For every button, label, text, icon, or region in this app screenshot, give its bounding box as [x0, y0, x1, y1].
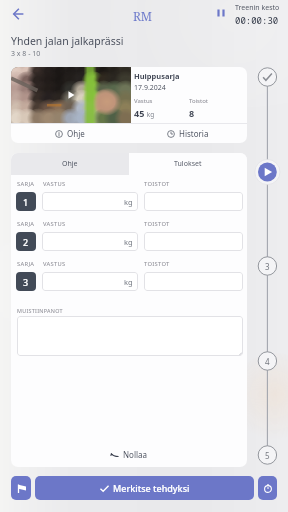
- button[interactable]: Rest timer: [258, 476, 277, 500]
- staticText: VASTUS: [43, 220, 144, 228]
- button[interactable]: Tulokset: [129, 153, 247, 175]
- button[interactable]: 5: [258, 446, 277, 465]
- staticText: Historia: [179, 128, 209, 139]
- staticText: Merkitse tehdyksi: [113, 482, 190, 494]
- button[interactable]: [17, 316, 243, 356]
- staticText: RM: [133, 8, 153, 24]
- staticText: Toistot: [189, 97, 208, 105]
- staticText: 2: [23, 236, 29, 248]
- staticText: kg: [145, 110, 155, 119]
- staticText: Ohje: [62, 159, 78, 169]
- staticText: 5: [265, 450, 270, 461]
- staticText: kg: [124, 197, 133, 207]
- staticText: SARJA: [17, 220, 43, 228]
- staticText: 3 x 8 - 10: [11, 49, 41, 59]
- staticText: Tulokset: [174, 159, 202, 169]
- staticText: 1: [23, 196, 29, 208]
- button[interactable]: kg: [42, 232, 138, 251]
- staticText: TOISTOT: [144, 260, 170, 268]
- button[interactable]: 4: [258, 352, 277, 371]
- staticText: TOISTOT: [144, 180, 170, 188]
- button[interactable]: Merkitse tehdyksi: [35, 476, 254, 500]
- staticText: Treenin kesto: [235, 3, 280, 13]
- button[interactable]: [144, 272, 243, 291]
- button[interactable]: Ohje: [11, 153, 129, 175]
- button[interactable]: Nollaa: [11, 443, 247, 465]
- button[interactable]: Historia: [129, 124, 247, 143]
- button[interactable]: 3: [258, 257, 277, 276]
- button[interactable]: kg: [42, 272, 138, 291]
- staticText: Yhden jalan jalkaprässi: [11, 34, 124, 48]
- staticText: 4: [265, 356, 270, 367]
- staticText: 8: [189, 107, 195, 119]
- staticText: TOISTOT: [144, 220, 170, 228]
- button[interactable]: Pause workout: [215, 7, 227, 19]
- staticText: Ohje: [67, 128, 85, 139]
- staticText: SARJA: [17, 180, 43, 188]
- staticText: MUISTIINPANOT: [17, 307, 63, 314]
- button[interactable]: [144, 232, 243, 251]
- button[interactable]: Flag set: [11, 476, 31, 500]
- staticText: kg: [124, 277, 133, 287]
- staticText: VASTUS: [43, 180, 144, 188]
- staticText: SARJA: [17, 260, 43, 268]
- staticText: 17.9.2024: [134, 83, 166, 93]
- staticText: Huippusarja: [134, 71, 180, 81]
- staticText: Vastus: [134, 97, 153, 105]
- button[interactable]: Ohje: [11, 124, 129, 143]
- staticText: VASTUS: [43, 260, 144, 268]
- button[interactable]: [144, 192, 243, 211]
- staticText: kg: [124, 237, 133, 247]
- staticText: Nollaa: [123, 449, 148, 460]
- button[interactable]: Back: [9, 5, 27, 23]
- staticText: 3: [23, 276, 29, 288]
- staticText: 00:00:30: [235, 14, 279, 26]
- button[interactable]: kg: [42, 192, 138, 211]
- staticText: 3: [265, 261, 270, 272]
- staticText: 45: [134, 107, 145, 119]
